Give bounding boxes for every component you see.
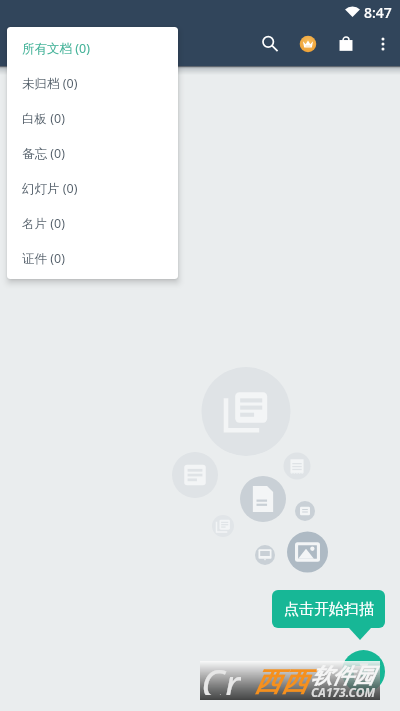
button[interactable]: Search — [253, 27, 287, 61]
button[interactable]: 备忘 (0) — [7, 136, 178, 171]
button[interactable]: 未归档 (0) — [7, 66, 178, 101]
staticText: 名片 (0) — [22, 215, 65, 232]
staticText: CA173.COM — [311, 684, 376, 700]
button[interactable]: Premium — [291, 27, 325, 61]
staticText: 点击开始扫描 — [284, 600, 374, 619]
button[interactable]: 白板 (0) — [7, 101, 178, 136]
staticText: 备忘 (0) — [22, 145, 65, 162]
button[interactable]: 点击开始扫描 — [272, 590, 385, 628]
staticText: Cr — [201, 656, 241, 695]
button[interactable]: 证件 (0) — [7, 241, 178, 276]
button[interactable]: 幻灯片 (0) — [7, 171, 178, 206]
button[interactable]: 名片 (0) — [7, 206, 178, 241]
staticText: 西西 — [254, 665, 308, 699]
button[interactable]: More options — [366, 27, 400, 61]
staticText: 证件 (0) — [22, 250, 65, 267]
staticText: 白板 (0) — [22, 110, 65, 127]
button[interactable]: Scan — [342, 650, 385, 693]
staticText: 所有文档 (0) — [22, 40, 90, 57]
staticText: 软件园 — [311, 663, 374, 689]
button[interactable]: Store — [329, 27, 363, 61]
staticText: 未归档 (0) — [22, 75, 78, 92]
staticText: 幻灯片 (0) — [22, 180, 78, 197]
button[interactable]: 所有文档 (0) — [7, 31, 178, 66]
staticText: 8:47 — [364, 3, 392, 22]
